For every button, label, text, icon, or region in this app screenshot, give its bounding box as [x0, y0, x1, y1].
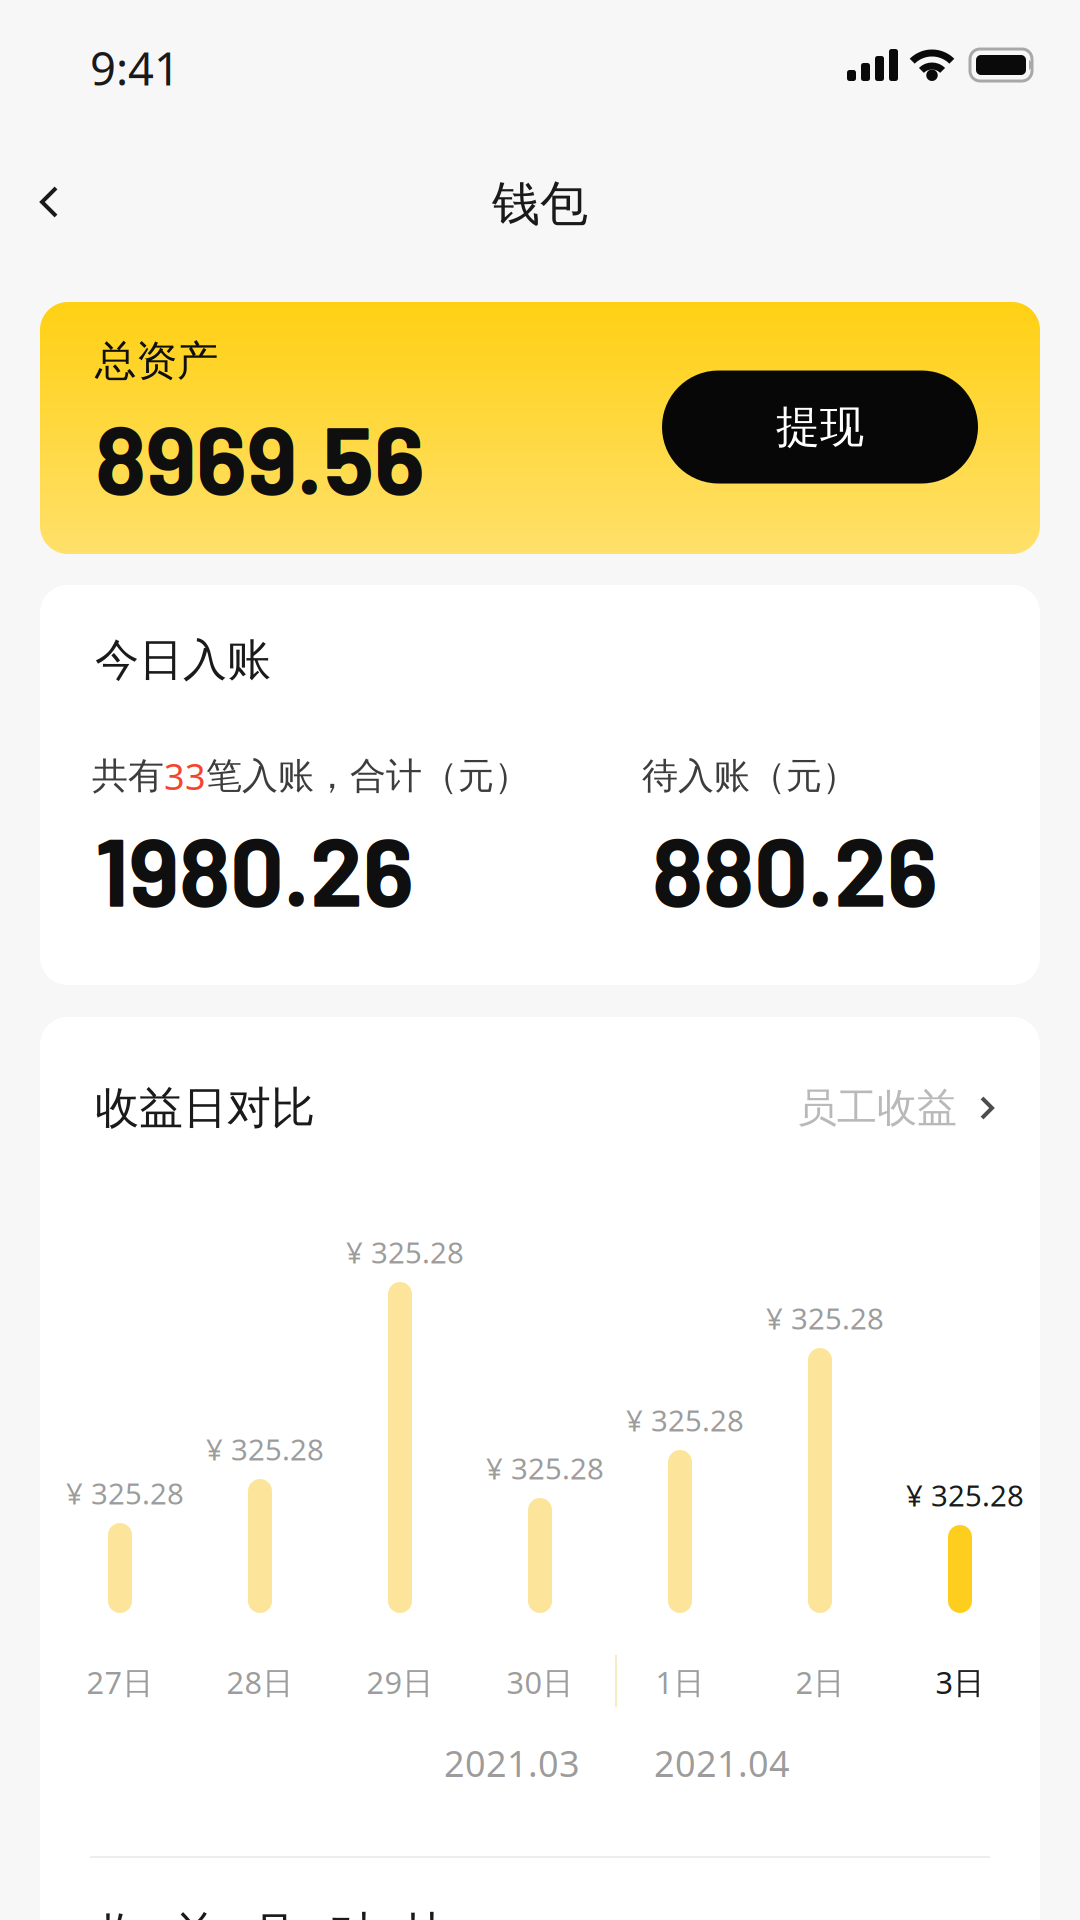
staticText: 总资产 [95, 336, 218, 386]
staticText: 29日 [366, 1662, 433, 1702]
staticText: 2日 [795, 1662, 844, 1702]
staticText: 9:41 [90, 38, 180, 98]
staticText: ¥ 325.28 [206, 1429, 324, 1468]
staticText: 33 [164, 752, 206, 800]
staticText: ¥ 325.28 [66, 1473, 184, 1512]
staticText: 今日入账 [95, 633, 271, 687]
button[interactable]: 员工收益 [797, 1083, 995, 1132]
button[interactable]: Back [30, 182, 70, 222]
staticText: 收益日对比 [95, 1081, 315, 1135]
staticText: 员工收益 [797, 1083, 957, 1132]
staticText: 钱包 [492, 174, 588, 233]
staticText: 收益月对比 [95, 1906, 452, 1920]
staticText: 1日 [655, 1662, 704, 1702]
staticText: 提现 [776, 400, 864, 454]
staticText: 2021.03 [444, 1739, 580, 1787]
staticText: ¥ 325.28 [626, 1400, 744, 1439]
staticText: 8969.56 [95, 400, 425, 514]
staticText: 2021.04 [654, 1739, 790, 1787]
button[interactable]: 提现 [662, 370, 978, 483]
staticText: ¥ 325.28 [766, 1298, 884, 1337]
staticText: 笔入账，合计（元） [206, 754, 530, 798]
staticText: ¥ 325.28 [906, 1475, 1024, 1514]
staticText: 880.26 [652, 812, 938, 926]
staticText: ¥ 325.28 [346, 1232, 464, 1271]
staticText: 30日 [506, 1662, 573, 1702]
staticText: 28日 [226, 1662, 293, 1702]
staticText: 共有 [92, 754, 164, 798]
staticText: 1980.26 [95, 812, 414, 926]
staticText: 待入账（元） [642, 754, 858, 798]
staticText: 27日 [86, 1662, 153, 1702]
staticText: 3日 [935, 1662, 984, 1702]
staticText: ¥ 325.28 [486, 1448, 604, 1487]
